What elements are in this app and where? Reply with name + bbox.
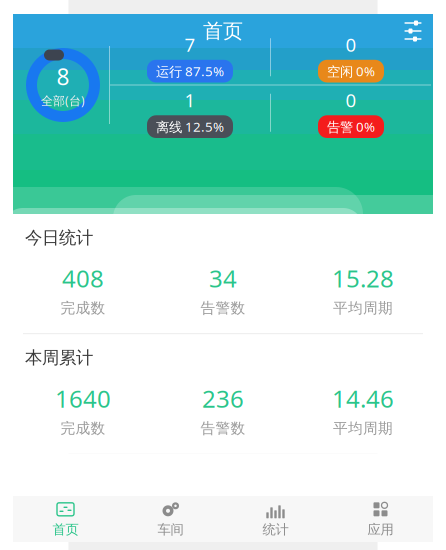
staticText: 车间 [157, 521, 183, 538]
staticText: 首页 [52, 521, 78, 538]
staticText: 今日统计 [25, 227, 93, 248]
staticText: 全部(台) [41, 93, 85, 108]
staticText: 离线 12.5% [156, 118, 224, 135]
staticText: 0 [345, 87, 356, 112]
staticText: 告警数 [200, 299, 245, 317]
staticText: 1640 [55, 382, 111, 414]
staticText: 1 [184, 87, 195, 112]
staticText: 平均周期 [333, 299, 393, 317]
staticText: 8 [56, 61, 69, 92]
staticText: 告警 0% [327, 118, 375, 135]
button[interactable]: 首页 [13, 494, 118, 544]
staticText: 统计 [262, 521, 288, 538]
staticText: 15.28 [332, 262, 394, 294]
staticText: 完成数 [60, 299, 105, 317]
button[interactable]: Settings [393, 13, 433, 49]
staticText: 首页 [203, 19, 243, 43]
staticText: 34 [209, 262, 237, 294]
staticText: 告警数 [200, 419, 245, 437]
staticText: 空闲 0% [327, 62, 375, 80]
staticText: 236 [202, 382, 244, 414]
staticText: 7 [184, 32, 195, 57]
staticText: 平均周期 [333, 419, 393, 437]
staticText: 408 [62, 262, 104, 294]
staticText: 14.46 [332, 382, 394, 414]
staticText: 本周累计 [25, 347, 93, 368]
button[interactable]: 应用 [328, 494, 433, 544]
staticText: 运行 87.5% [156, 62, 224, 80]
button[interactable]: 车间 [118, 494, 223, 544]
staticText: 完成数 [60, 419, 105, 437]
staticText: 应用 [367, 521, 393, 538]
staticText: 0 [345, 32, 356, 57]
button[interactable]: 统计 [223, 494, 328, 544]
